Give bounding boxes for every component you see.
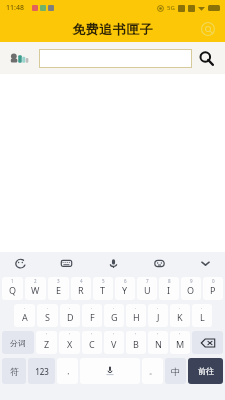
staticText: 5 [102, 278, 105, 284]
staticText: · [113, 305, 115, 311]
button[interactable]: 4 [71, 277, 91, 300]
staticText: V [111, 338, 117, 350]
button[interactable]: Emoji [10, 253, 30, 273]
staticText: I [167, 284, 171, 296]
staticText: 5G [167, 4, 175, 12]
staticText: 3 [57, 278, 60, 284]
button[interactable]: · [192, 304, 212, 327]
button[interactable]: 2 [25, 277, 46, 300]
button[interactable]: · [148, 304, 168, 327]
button[interactable]: ' [36, 331, 57, 354]
staticText: A [22, 311, 28, 323]
staticText: X [67, 338, 73, 350]
button[interactable]: 9 [181, 277, 201, 300]
staticText: ' [113, 332, 115, 338]
staticText: J [157, 311, 160, 323]
button[interactable]: 7 [137, 277, 157, 300]
button[interactable]: 符 [2, 358, 26, 384]
button[interactable]: ' [170, 331, 190, 354]
staticText: L [200, 311, 205, 323]
staticText: ， [64, 366, 72, 376]
button[interactable] [39, 49, 192, 68]
button[interactable]: 8 [159, 277, 179, 300]
staticText: 9 [190, 278, 193, 284]
staticText: T [100, 284, 106, 296]
staticText: 免费追书匣子 [72, 21, 153, 37]
staticText: 7 [146, 278, 149, 284]
button[interactable]: 123 [28, 358, 55, 384]
staticText: P [210, 284, 216, 296]
button[interactable]: ' [148, 331, 168, 354]
staticText: Z [44, 338, 50, 350]
button[interactable]: Search [199, 20, 217, 38]
staticText: ' [179, 332, 181, 338]
staticText: 前往 [198, 366, 214, 376]
button[interactable]: Collapse keyboard [195, 253, 215, 273]
staticText: D [67, 311, 74, 323]
staticText: · [157, 305, 159, 311]
staticText: S [45, 311, 50, 323]
button[interactable]: Go [188, 358, 223, 384]
button[interactable]: App logo [5, 43, 35, 73]
button[interactable]: 6 [115, 277, 135, 300]
button[interactable]: Search [192, 44, 220, 72]
button[interactable]: 分词 [2, 331, 34, 354]
staticText: 123 [35, 366, 49, 377]
staticText: K [177, 311, 183, 323]
staticText: R [78, 284, 84, 296]
staticText: N [155, 338, 162, 350]
button[interactable]: 1 [2, 277, 23, 300]
button[interactable]: Backspace [192, 331, 223, 354]
button[interactable]: · [82, 304, 102, 327]
staticText: 6 [124, 278, 127, 284]
button[interactable]: 。 [142, 358, 163, 384]
button[interactable]: · [170, 304, 190, 327]
button[interactable]: Keyboard [56, 253, 76, 273]
staticText: 分词 [10, 338, 26, 348]
button[interactable]: ， [57, 358, 78, 384]
button[interactable]: 中 [165, 358, 186, 384]
staticText: 0 [212, 278, 215, 284]
staticText: E [56, 284, 62, 296]
button[interactable]: 3 [48, 277, 69, 300]
staticText: ' [46, 332, 48, 338]
staticText: U [144, 284, 151, 296]
staticText: Y [122, 284, 128, 296]
button[interactable]: ' [82, 331, 102, 354]
button[interactable]: ' [59, 331, 80, 354]
staticText: · [69, 305, 71, 311]
staticText: 符 [10, 366, 19, 377]
staticText: · [179, 305, 181, 311]
button[interactable]: 5 [93, 277, 113, 300]
staticText: B [133, 338, 139, 350]
staticText: C [89, 338, 95, 350]
button[interactable]: ' [126, 331, 146, 354]
button[interactable]: 0 [203, 277, 223, 300]
staticText: 。 [149, 366, 157, 376]
button[interactable]: Space [80, 358, 140, 384]
staticText: · [24, 305, 26, 311]
staticText: ' [69, 332, 71, 338]
staticText: W [31, 284, 40, 296]
staticText: 2 [34, 278, 37, 284]
button[interactable]: Stickers [149, 253, 169, 273]
staticText: · [91, 305, 93, 311]
button[interactable]: · [37, 304, 58, 327]
button[interactable]: · [104, 304, 124, 327]
staticText: 中 [171, 366, 180, 377]
staticText: ' [91, 332, 93, 338]
button[interactable]: ' [104, 331, 124, 354]
staticText: H [133, 311, 140, 323]
staticText: · [47, 305, 49, 311]
staticText: O [187, 284, 195, 296]
button[interactable]: · [60, 304, 80, 327]
button[interactable]: · [126, 304, 146, 327]
staticText: ' [135, 332, 137, 338]
staticText: Q [9, 284, 17, 296]
staticText: 8 [168, 278, 171, 284]
button[interactable]: · [14, 304, 35, 327]
button[interactable]: Voice input [103, 253, 123, 273]
staticText: · [201, 305, 203, 311]
staticText: ' [157, 332, 159, 338]
staticText: · [135, 305, 137, 311]
